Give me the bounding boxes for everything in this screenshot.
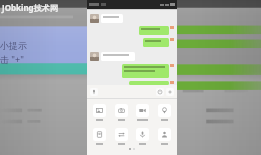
button[interactable]: 名片 [155, 128, 174, 145]
button[interactable] [90, 81, 174, 85]
button[interactable]: 视频通话 [133, 104, 152, 121]
button[interactable] [90, 14, 174, 23]
staticText: JObking技术网 [2, 2, 58, 13]
button[interactable]: 位置 [155, 104, 174, 121]
button[interactable]: 转账 [112, 128, 131, 145]
button[interactable] [90, 26, 174, 35]
button[interactable] [90, 52, 174, 61]
button[interactable]: 语音 [133, 128, 152, 145]
staticText: 小提示 [0, 40, 27, 51]
button[interactable] [90, 38, 174, 47]
staticText: 击 "+" [0, 53, 24, 65]
button[interactable] [90, 64, 174, 78]
button[interactable]: Emoji [156, 88, 164, 96]
button[interactable]: Voice input [90, 88, 98, 96]
button[interactable]: More options [166, 88, 174, 96]
button[interactable]: 红包 [90, 128, 109, 145]
button[interactable]: 相册 [90, 104, 109, 121]
button[interactable]: 拍摄 [112, 104, 131, 121]
